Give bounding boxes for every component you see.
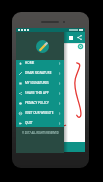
staticText: MY SIGNATURES [25, 81, 49, 85]
staticText: DRAW SIGNATURE [25, 71, 52, 75]
button[interactable]: VISIT OUR WEBSITE [16, 108, 64, 118]
staticText: VISIT OUR WEBSITE [25, 111, 54, 115]
staticText: PRIVACY POLICY [25, 101, 49, 105]
button[interactable]: DRAW SIGNATURE [16, 68, 64, 78]
button[interactable]: MY SIGNATURES [16, 78, 64, 88]
button[interactable]: SHARE THIS APP [16, 88, 64, 98]
staticText: QUIT [25, 121, 33, 125]
button[interactable]: UNDO [16, 142, 85, 152]
staticText: © 2017 ALL RIGHTS RESERVED [22, 131, 59, 135]
button[interactable]: HOME [16, 58, 64, 68]
staticText: SHARE THIS APP [25, 91, 49, 95]
button[interactable]: QUIT [16, 118, 64, 128]
staticText: HOME [25, 61, 35, 65]
button[interactable]: PRIVACY POLICY [16, 98, 64, 108]
button[interactable]: Share signature [75, 33, 84, 42]
button[interactable]: Save signature [66, 33, 75, 42]
